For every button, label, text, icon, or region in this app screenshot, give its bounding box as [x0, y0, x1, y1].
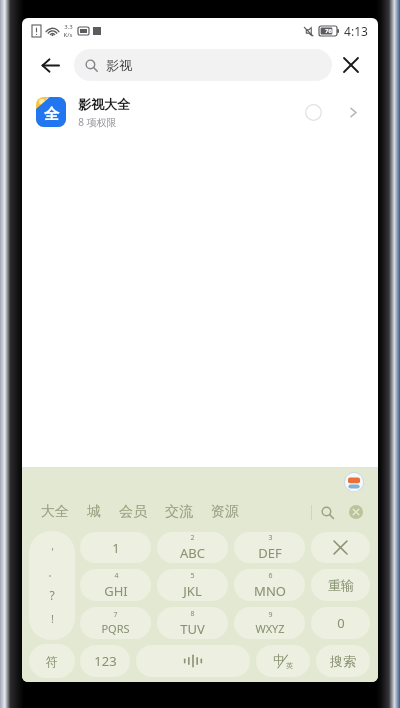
staticText: 3.3	[64, 23, 73, 31]
button[interactable]: 4	[80, 569, 151, 601]
staticText: 8	[190, 609, 195, 619]
button[interactable]: Details	[338, 97, 368, 127]
staticText: 中	[273, 652, 285, 667]
button[interactable]: 2	[157, 532, 228, 563]
staticText: 7	[113, 610, 118, 620]
button[interactable]	[136, 645, 250, 677]
button[interactable]: '	[29, 531, 75, 640]
staticText: 英	[286, 661, 293, 670]
staticText: 资源	[211, 503, 239, 521]
button[interactable]: 8	[157, 607, 228, 639]
staticText: 6	[268, 571, 273, 581]
staticText: '	[51, 545, 54, 559]
button[interactable]: 大全	[41, 503, 69, 521]
staticText: 4:13	[344, 23, 368, 39]
staticText: 重输	[328, 577, 354, 593]
button[interactable]: 中	[256, 645, 310, 677]
staticText: 。	[48, 567, 57, 578]
staticText: 8 项权限	[78, 115, 117, 129]
button[interactable]: 1	[80, 532, 151, 563]
button[interactable]: 全	[22, 86, 378, 138]
button[interactable]: 搜索	[316, 645, 370, 677]
staticText: !	[51, 611, 54, 626]
button[interactable]: 资源	[211, 503, 239, 521]
button[interactable]: Clear	[332, 46, 370, 84]
staticText: ABC	[180, 544, 205, 562]
staticText: TUV	[180, 620, 205, 638]
staticText: 城	[87, 503, 101, 521]
button[interactable]: 9	[234, 607, 305, 639]
staticText: 0	[337, 614, 345, 632]
staticText: WXYZ	[255, 621, 285, 636]
button[interactable]: 影视	[74, 49, 332, 81]
button[interactable]	[311, 532, 370, 563]
button[interactable]: 123	[80, 645, 130, 677]
staticText: 全	[44, 105, 59, 124]
staticText: 1	[112, 539, 120, 557]
staticText: 4	[114, 571, 119, 581]
button[interactable]: Search candidates	[312, 497, 342, 527]
button[interactable]: 6	[234, 569, 305, 601]
staticText: 9	[268, 610, 273, 620]
staticText: PQRS	[101, 621, 130, 636]
staticText: JKL	[183, 582, 202, 600]
button[interactable]: Back	[30, 45, 70, 85]
staticText: 123	[94, 652, 117, 670]
button[interactable]: 重输	[311, 569, 370, 601]
staticText: DEF	[258, 544, 282, 562]
staticText: 2	[190, 533, 195, 543]
button[interactable]: 城	[87, 503, 101, 521]
staticText: 搜索	[330, 653, 356, 669]
staticText: 76	[325, 27, 332, 35]
button[interactable]: 7	[80, 607, 151, 639]
staticText: 影视大全	[78, 96, 130, 112]
button[interactable]: 5	[157, 569, 228, 601]
staticText: 影视	[106, 57, 132, 73]
staticText: ?	[49, 587, 55, 603]
staticText: MNO	[254, 582, 286, 600]
staticText: 交流	[165, 503, 193, 521]
button[interactable]: Close candidates	[342, 498, 370, 526]
button[interactable]: 会员	[119, 503, 147, 521]
button[interactable]: Keyboard account	[344, 472, 364, 492]
staticText: 大全	[41, 503, 69, 521]
button[interactable]: 3	[234, 532, 305, 563]
staticText: 5	[190, 571, 195, 581]
button[interactable]: 符	[29, 644, 75, 678]
staticText: 符	[46, 654, 58, 669]
button[interactable]: 交流	[165, 503, 193, 521]
staticText: GHI	[104, 582, 128, 600]
staticText: 会员	[119, 503, 147, 521]
staticText: K/s	[63, 31, 73, 39]
staticText: 3	[268, 533, 273, 543]
button[interactable]: 0	[311, 607, 370, 639]
button[interactable]: Select	[296, 95, 330, 129]
